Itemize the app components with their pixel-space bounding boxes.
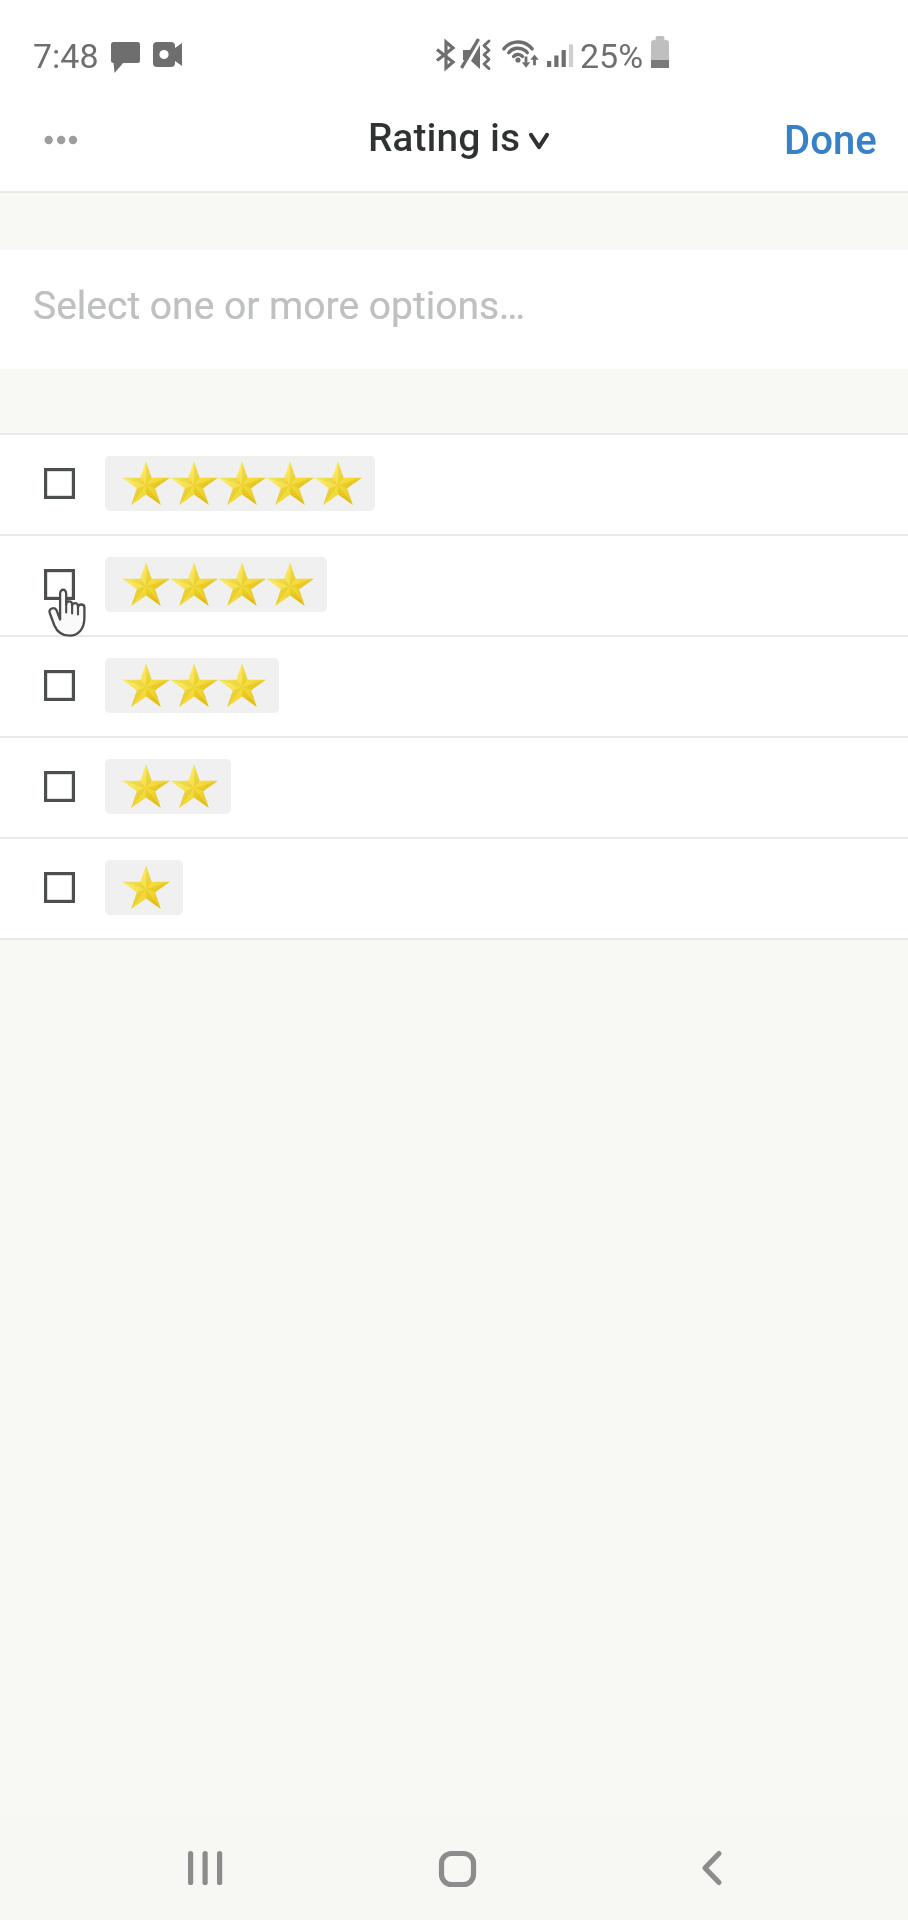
button[interactable]: Done	[766, 107, 895, 174]
button[interactable]: 5 stars	[0, 435, 908, 534]
staticText: Rating is	[368, 115, 521, 161]
staticText: 7:48	[33, 36, 99, 76]
button[interactable]: Home	[394, 1816, 514, 1920]
staticText: Done	[784, 117, 877, 164]
button[interactable]: 3 stars	[0, 637, 908, 736]
staticText: 25%	[580, 36, 644, 76]
button[interactable]: 1 star	[0, 839, 908, 938]
staticText: Select one or more options…	[33, 283, 526, 329]
button[interactable]: More options	[18, 114, 78, 174]
button[interactable]: Rating is	[364, 109, 553, 167]
button[interactable]: Recent apps	[144, 1816, 264, 1920]
button[interactable]: 2 stars	[0, 738, 908, 837]
button[interactable]: Back	[652, 1816, 772, 1920]
button[interactable]: 4 stars	[0, 536, 908, 635]
button[interactable]: Select one or more options…	[0, 250, 908, 369]
